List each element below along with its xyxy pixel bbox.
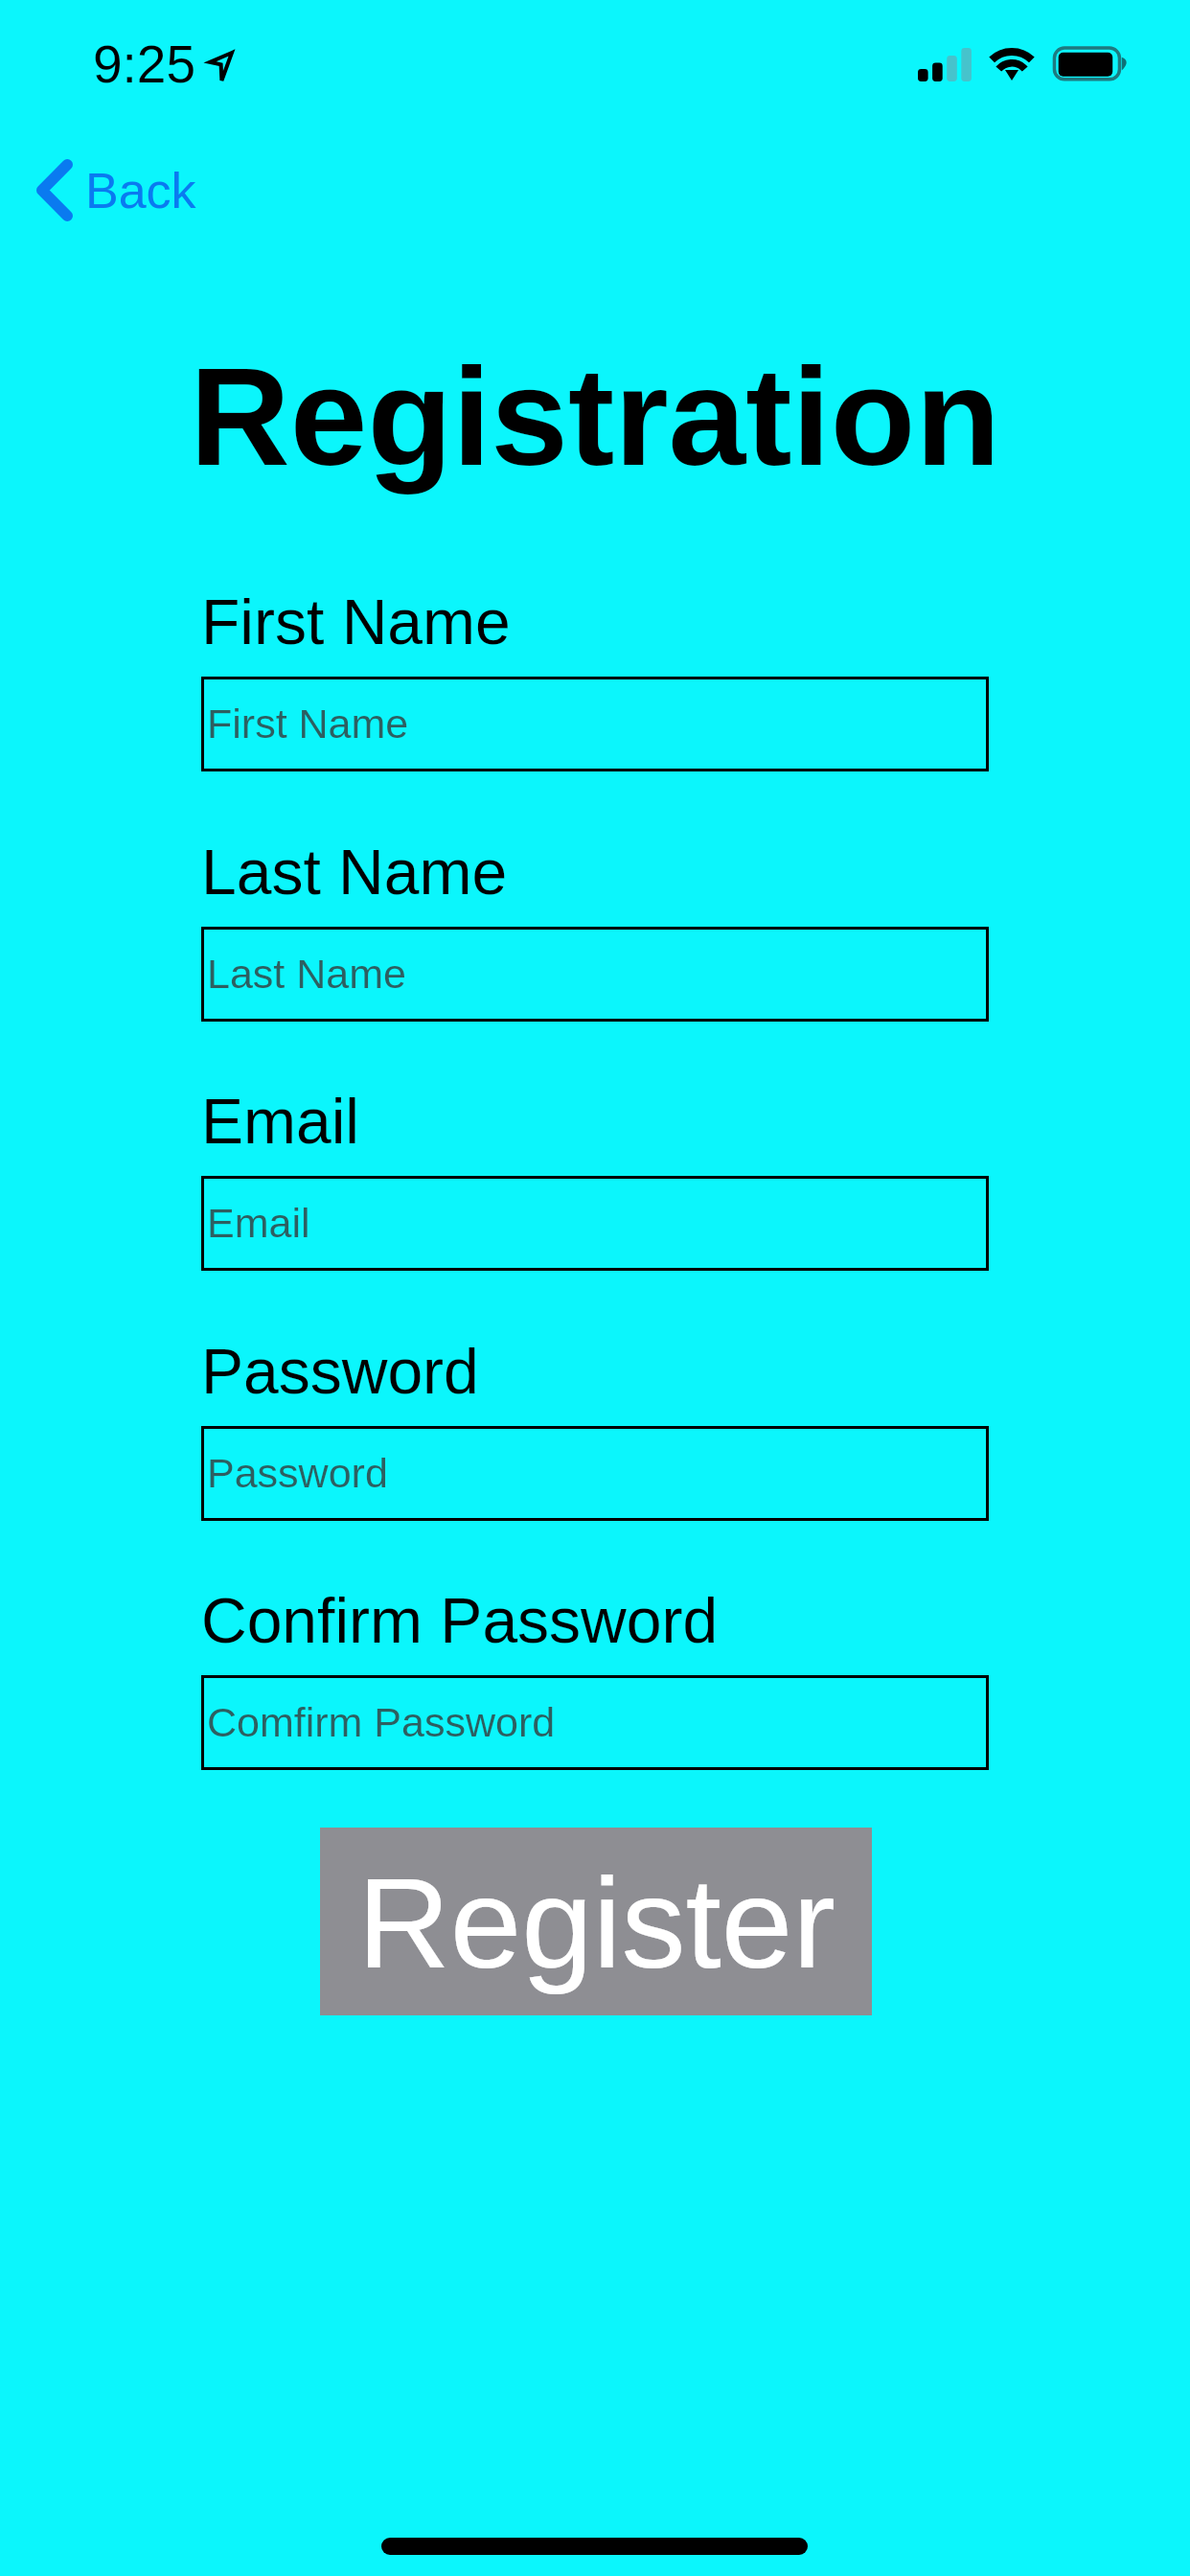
button[interactable]: Email bbox=[201, 1176, 989, 1271]
staticText: Last Name bbox=[207, 951, 406, 997]
staticText: Password bbox=[207, 1450, 388, 1496]
staticText: Last Name bbox=[201, 837, 508, 908]
staticText: Register bbox=[357, 1851, 835, 1995]
staticText: Confirm Password bbox=[201, 1585, 719, 1656]
other: Location in use bbox=[203, 45, 238, 85]
button[interactable]: Back bbox=[21, 148, 212, 233]
button[interactable]: Register bbox=[320, 1828, 872, 2015]
staticText: Back bbox=[85, 163, 196, 218]
staticText: Registration bbox=[0, 339, 1190, 494]
staticText: Password bbox=[201, 1336, 479, 1407]
staticText: 9:25 bbox=[93, 34, 196, 93]
button[interactable]: First Name bbox=[201, 677, 989, 771]
other: Battery full bbox=[1051, 45, 1132, 82]
staticText: Comfirm Password bbox=[207, 1699, 556, 1745]
staticText: Email bbox=[207, 1200, 310, 1246]
staticText: Email bbox=[201, 1086, 360, 1157]
staticText: First Name bbox=[201, 586, 511, 657]
other: Wi-Fi bbox=[985, 41, 1039, 83]
button[interactable]: Password bbox=[201, 1426, 989, 1521]
other: Cellular signal bbox=[918, 48, 972, 81]
button[interactable]: Comfirm Password bbox=[201, 1675, 989, 1770]
staticText: First Name bbox=[207, 701, 409, 747]
button[interactable]: Last Name bbox=[201, 927, 989, 1022]
